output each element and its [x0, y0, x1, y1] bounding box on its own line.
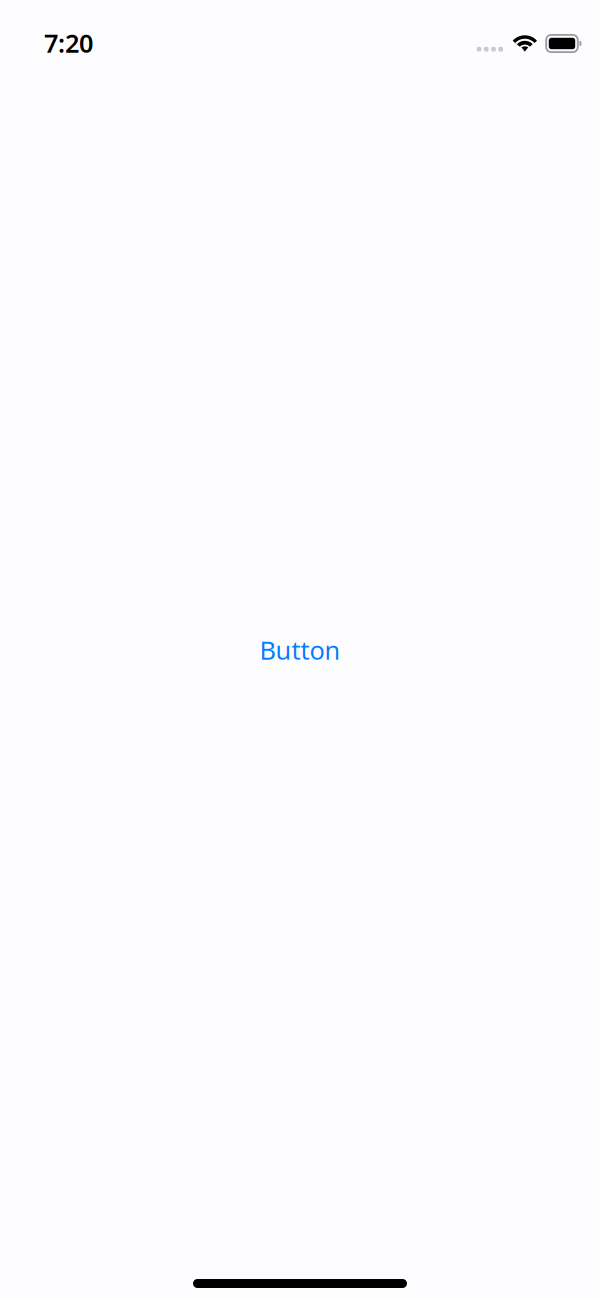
- button[interactable]: Button: [259, 633, 340, 667]
- staticText: 7:20: [44, 26, 93, 60]
- staticText: Button: [259, 633, 340, 667]
